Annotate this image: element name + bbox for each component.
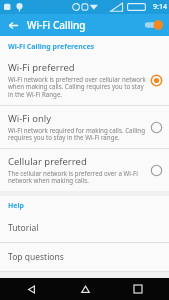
button[interactable]: Back (4, 16, 22, 34)
staticText: 9:14 (153, 2, 167, 12)
staticText: Tutorial (8, 222, 39, 234)
button[interactable]: Wi-Fi only (0, 106, 169, 148)
staticText: Wi-Fi only (8, 112, 52, 125)
button[interactable]: Tutorial (0, 214, 169, 242)
staticText: Help (8, 201, 25, 211)
staticText: Wi-Fi network required for making calls.… (8, 126, 146, 142)
staticText: Wi-Fi preferred (8, 61, 75, 74)
staticText: Wi-Fi Calling preferences (8, 42, 95, 52)
staticText: Top questions (8, 251, 64, 263)
button[interactable]: Wi-Fi Calling on/off (142, 17, 164, 33)
staticText: The cellular network is preferred over a… (8, 169, 146, 185)
staticText: Wi-Fi Calling (27, 18, 86, 32)
button[interactable]: Cellular preferred (0, 149, 169, 191)
button[interactable]: Wi-Fi preferred (0, 55, 169, 105)
button[interactable]: Home (74, 278, 96, 300)
staticText: Cellular preferred (8, 155, 87, 168)
button[interactable]: Recents (127, 278, 149, 300)
button[interactable]: Back (20, 278, 42, 300)
staticText: Wi-Fi network is preferred over cellular… (8, 75, 146, 99)
button[interactable]: Top questions (0, 243, 169, 271)
